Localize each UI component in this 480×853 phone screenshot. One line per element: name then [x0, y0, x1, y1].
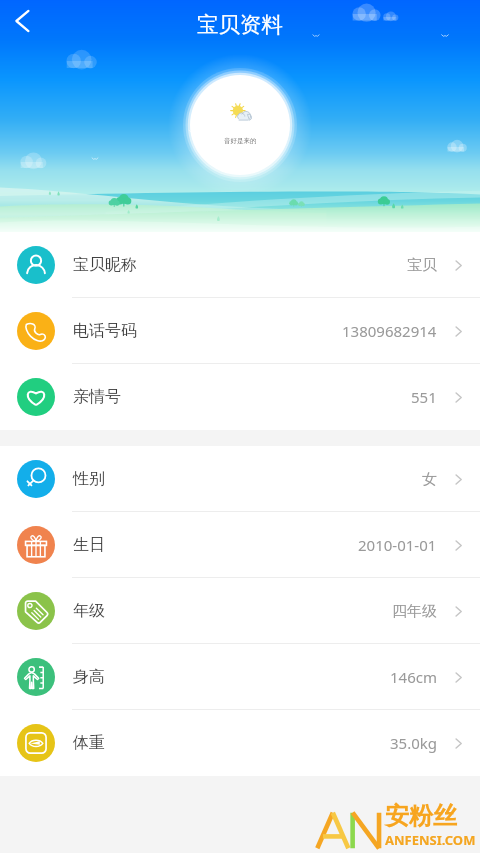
- button[interactable]: 体重: [0, 710, 480, 776]
- staticText: 2010-01-01: [358, 535, 437, 555]
- button[interactable]: 生日: [0, 512, 480, 578]
- staticText: 生日: [73, 535, 105, 555]
- staticText: 电话号码: [73, 321, 137, 341]
- button[interactable]: 电话号码: [0, 298, 480, 364]
- staticText: 体重: [73, 733, 105, 753]
- staticText: 性别: [73, 469, 105, 489]
- staticText: 宝贝: [407, 256, 437, 275]
- staticText: 四年级: [392, 602, 437, 621]
- button[interactable]: 宝贝昵称: [0, 232, 480, 298]
- staticText: 年级: [73, 601, 105, 621]
- button[interactable]: 身高: [0, 644, 480, 710]
- button[interactable]: Avatar: [183, 68, 297, 182]
- staticText: 身高: [73, 667, 105, 687]
- staticText: 35.0kg: [390, 733, 437, 753]
- staticText: 宝贝昵称: [73, 255, 137, 275]
- staticText: 音好是来的: [224, 137, 257, 145]
- staticText: 146cm: [390, 667, 437, 687]
- staticText: 安粉丝: [385, 801, 457, 831]
- button[interactable]: 亲情号: [0, 364, 480, 430]
- staticText: 宝贝资料: [197, 11, 283, 38]
- staticText: 13809682914: [342, 321, 437, 341]
- staticText: ANFENSI.COM: [385, 831, 476, 849]
- button[interactable]: 性别: [0, 446, 480, 512]
- staticText: 551: [411, 387, 437, 407]
- button[interactable]: Back: [1, 0, 43, 42]
- staticText: 亲情号: [73, 387, 121, 407]
- staticText: 女: [422, 470, 437, 489]
- button[interactable]: 年级: [0, 578, 480, 644]
